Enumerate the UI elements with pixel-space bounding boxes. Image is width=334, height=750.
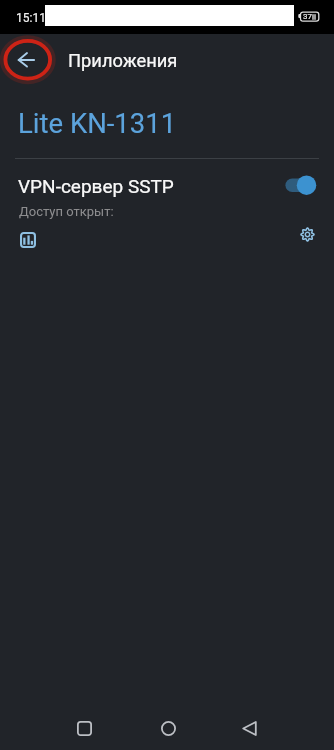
staticText: VPN-сервер SSTP bbox=[18, 175, 174, 197]
button[interactable]: Recent apps bbox=[56, 704, 112, 750]
button[interactable]: Back bbox=[221, 704, 277, 750]
staticText: 37 bbox=[303, 12, 312, 21]
button[interactable]: Statistics bbox=[14, 226, 42, 254]
staticText: Доступ открыт: bbox=[19, 204, 114, 219]
staticText: Приложения bbox=[68, 50, 178, 71]
button[interactable]: VPN server toggle bbox=[280, 170, 322, 200]
staticText: 15:11 bbox=[16, 11, 46, 25]
button[interactable]: Settings bbox=[295, 222, 320, 247]
button[interactable]: Home bbox=[140, 704, 196, 750]
button[interactable]: Navigate up bbox=[4, 40, 49, 79]
staticText: Lite KN-1311 bbox=[18, 107, 177, 139]
